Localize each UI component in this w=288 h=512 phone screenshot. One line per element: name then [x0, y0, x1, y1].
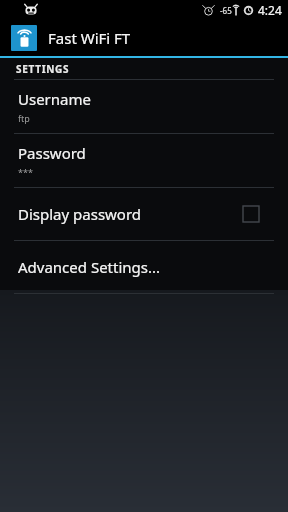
- staticText: -65: [220, 5, 232, 16]
- staticText: Username: [18, 89, 91, 109]
- button[interactable]: Fast WiFi FT: [0, 20, 288, 56]
- staticText: ***: [18, 166, 33, 178]
- button[interactable]: Username: [0, 80, 288, 133]
- staticText: SETTINGS: [16, 62, 70, 76]
- button[interactable]: Password: [0, 134, 288, 187]
- staticText: Fast WiFi FT: [48, 28, 131, 48]
- staticText: Password: [18, 143, 86, 163]
- button[interactable]: Display password: [0, 188, 288, 240]
- other: Display password checkbox: [243, 206, 259, 222]
- staticText: ftp: [18, 112, 30, 124]
- button[interactable]: Advanced Settings...: [0, 241, 288, 293]
- staticText: Advanced Settings...: [18, 257, 161, 277]
- staticText: Display password: [18, 204, 142, 224]
- staticText: 4:24: [258, 2, 282, 18]
